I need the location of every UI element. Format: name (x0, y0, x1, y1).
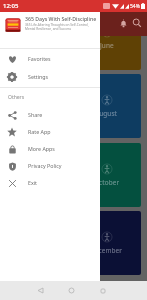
staticText: October (21, 178, 47, 187)
staticText: Privacy Policy (28, 162, 62, 169)
staticText: Settings (28, 73, 49, 80)
staticText: August (23, 109, 46, 118)
button[interactable]: Rate App (0, 123, 100, 140)
staticText: June (27, 41, 41, 50)
staticText: Rate App (28, 128, 51, 135)
staticText: August (95, 109, 118, 118)
staticText: More Apps (28, 145, 55, 152)
staticText: Exit (28, 179, 38, 186)
button[interactable]: Exit (0, 174, 100, 191)
button[interactable]: June (0, 36, 68, 70)
button[interactable]: Settings (0, 68, 100, 85)
button[interactable]: December (72, 211, 141, 275)
staticText: Share (28, 111, 43, 118)
button[interactable]: Favorites (0, 50, 100, 67)
button[interactable]: Search (128, 14, 146, 32)
staticText: December (90, 246, 123, 255)
staticText: Others (8, 94, 25, 101)
staticText: October (94, 178, 120, 187)
button[interactable]: Recents (96, 284, 109, 297)
button[interactable]: Notifications (114, 14, 132, 32)
button[interactable]: October (0, 143, 68, 207)
staticText: Favorites (28, 55, 51, 62)
staticText: Mental Resilience, and Success (25, 27, 71, 31)
button[interactable]: June (72, 36, 141, 70)
staticText: 365 Days With Self-Discipline (25, 15, 97, 22)
staticText: 54% (130, 3, 140, 10)
staticText: 365 Life-Altering Thoughts on Self-Contr… (25, 23, 89, 27)
staticText: June (100, 41, 114, 50)
button[interactable]: Back (34, 284, 47, 297)
button[interactable]: October (72, 143, 141, 207)
button[interactable]: Home (65, 284, 78, 297)
button[interactable]: August (72, 74, 141, 138)
staticText: 12:05 (3, 2, 19, 10)
button[interactable]: More Apps (0, 140, 100, 157)
button[interactable]: August (0, 74, 68, 138)
button[interactable]: Share (0, 106, 100, 123)
button[interactable]: Privacy Policy (0, 157, 100, 174)
